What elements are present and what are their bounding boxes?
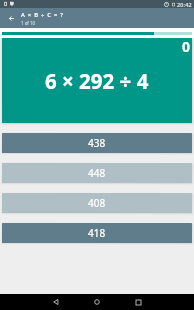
button[interactable]: Recent apps xyxy=(128,294,148,310)
staticText: 20:42 xyxy=(177,1,192,8)
button[interactable]: Back xyxy=(46,294,66,310)
button[interactable]: 408 xyxy=(2,193,192,213)
staticText: 408 xyxy=(88,196,106,210)
button[interactable]: 448 xyxy=(2,163,192,183)
button[interactable]: Navigate up xyxy=(0,8,21,28)
button[interactable]: 418 xyxy=(2,223,192,243)
button[interactable]: 438 xyxy=(2,133,192,153)
staticText: A × B ÷ C = ? xyxy=(21,11,64,19)
staticText: 448 xyxy=(88,166,106,180)
staticText: 438 xyxy=(88,136,106,150)
staticText: 0 xyxy=(182,38,191,56)
staticText: 418 xyxy=(88,226,106,240)
button[interactable]: Home xyxy=(87,294,107,310)
staticText: 1 of 10 xyxy=(21,20,35,26)
staticText: 6 × 292 ÷ 4 xyxy=(45,67,149,95)
